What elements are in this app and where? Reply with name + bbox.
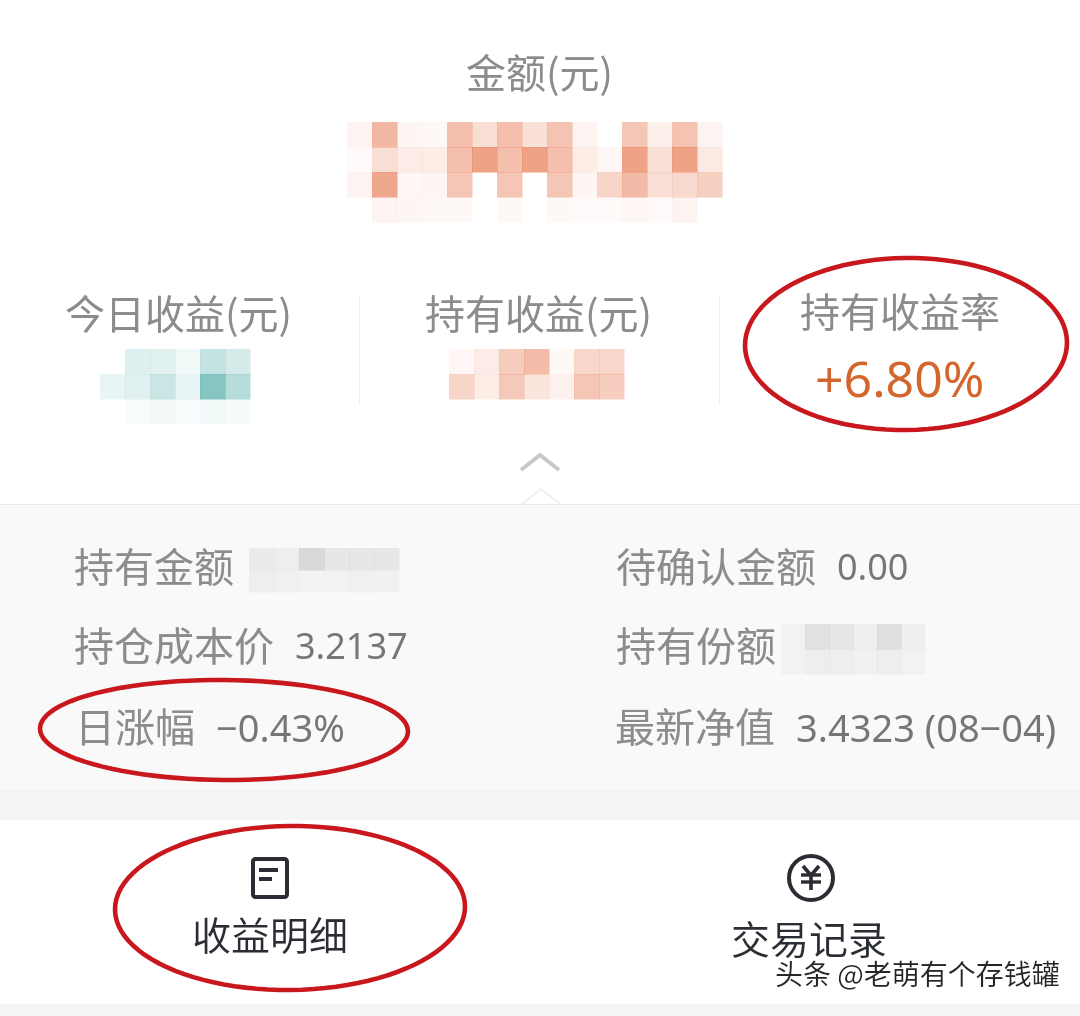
- staticText: 头条 @老萌有个存钱罐: [773, 951, 1058, 992]
- staticText: 今日收益(元): [65, 283, 293, 341]
- staticText: −0.43%: [216, 701, 345, 753]
- staticText: 头条 @老萌有个存钱罐: [777, 953, 1062, 994]
- button[interactable]: 金额(元) 总资产: [0, 20, 1080, 260]
- staticText: 0.00: [837, 542, 909, 591]
- staticText: 头条 @老萌有个存钱罐: [777, 951, 1062, 992]
- staticText: 最新净值: [615, 696, 775, 754]
- staticText: 头条 @老萌有个存钱罐: [773, 955, 1058, 996]
- staticText: 3.4323 (08−04): [796, 701, 1057, 753]
- staticText: 收益明细: [192, 905, 349, 961]
- staticText: 头条 @老萌有个存钱罐: [773, 953, 1058, 994]
- button[interactable]: 持有收益率 +6.80%: [720, 280, 1080, 415]
- staticText: 金额(元): [466, 42, 614, 100]
- staticText: 持有金额: [74, 536, 234, 594]
- button[interactable]: 今日收益(元): [0, 280, 359, 415]
- button[interactable]: Collapse: [470, 430, 610, 496]
- staticText: 持有收益率: [800, 281, 1000, 339]
- staticText: 持有收益(元): [425, 283, 653, 341]
- staticText: 3.2137: [295, 621, 408, 670]
- staticText: 头条 @老萌有个存钱罐: [775, 953, 1060, 994]
- staticText: 持仓成本价: [74, 615, 274, 673]
- button[interactable]: 持有收益(元): [360, 280, 719, 415]
- staticText: 日涨幅: [75, 696, 195, 754]
- staticText: 头条 @老萌有个存钱罐: [777, 955, 1062, 996]
- staticText: 头条 @老萌有个存钱罐: [775, 951, 1060, 992]
- staticText: 头条 @老萌有个存钱罐: [775, 955, 1060, 996]
- staticText: +6.80%: [815, 344, 985, 412]
- button[interactable]: 收益明细: [0, 820, 540, 1004]
- staticText: 交易记录: [731, 909, 888, 965]
- staticText: 持有份额: [616, 615, 776, 673]
- button[interactable]: 交易记录: [540, 820, 1080, 1004]
- staticText: 待确认金额: [616, 536, 816, 594]
